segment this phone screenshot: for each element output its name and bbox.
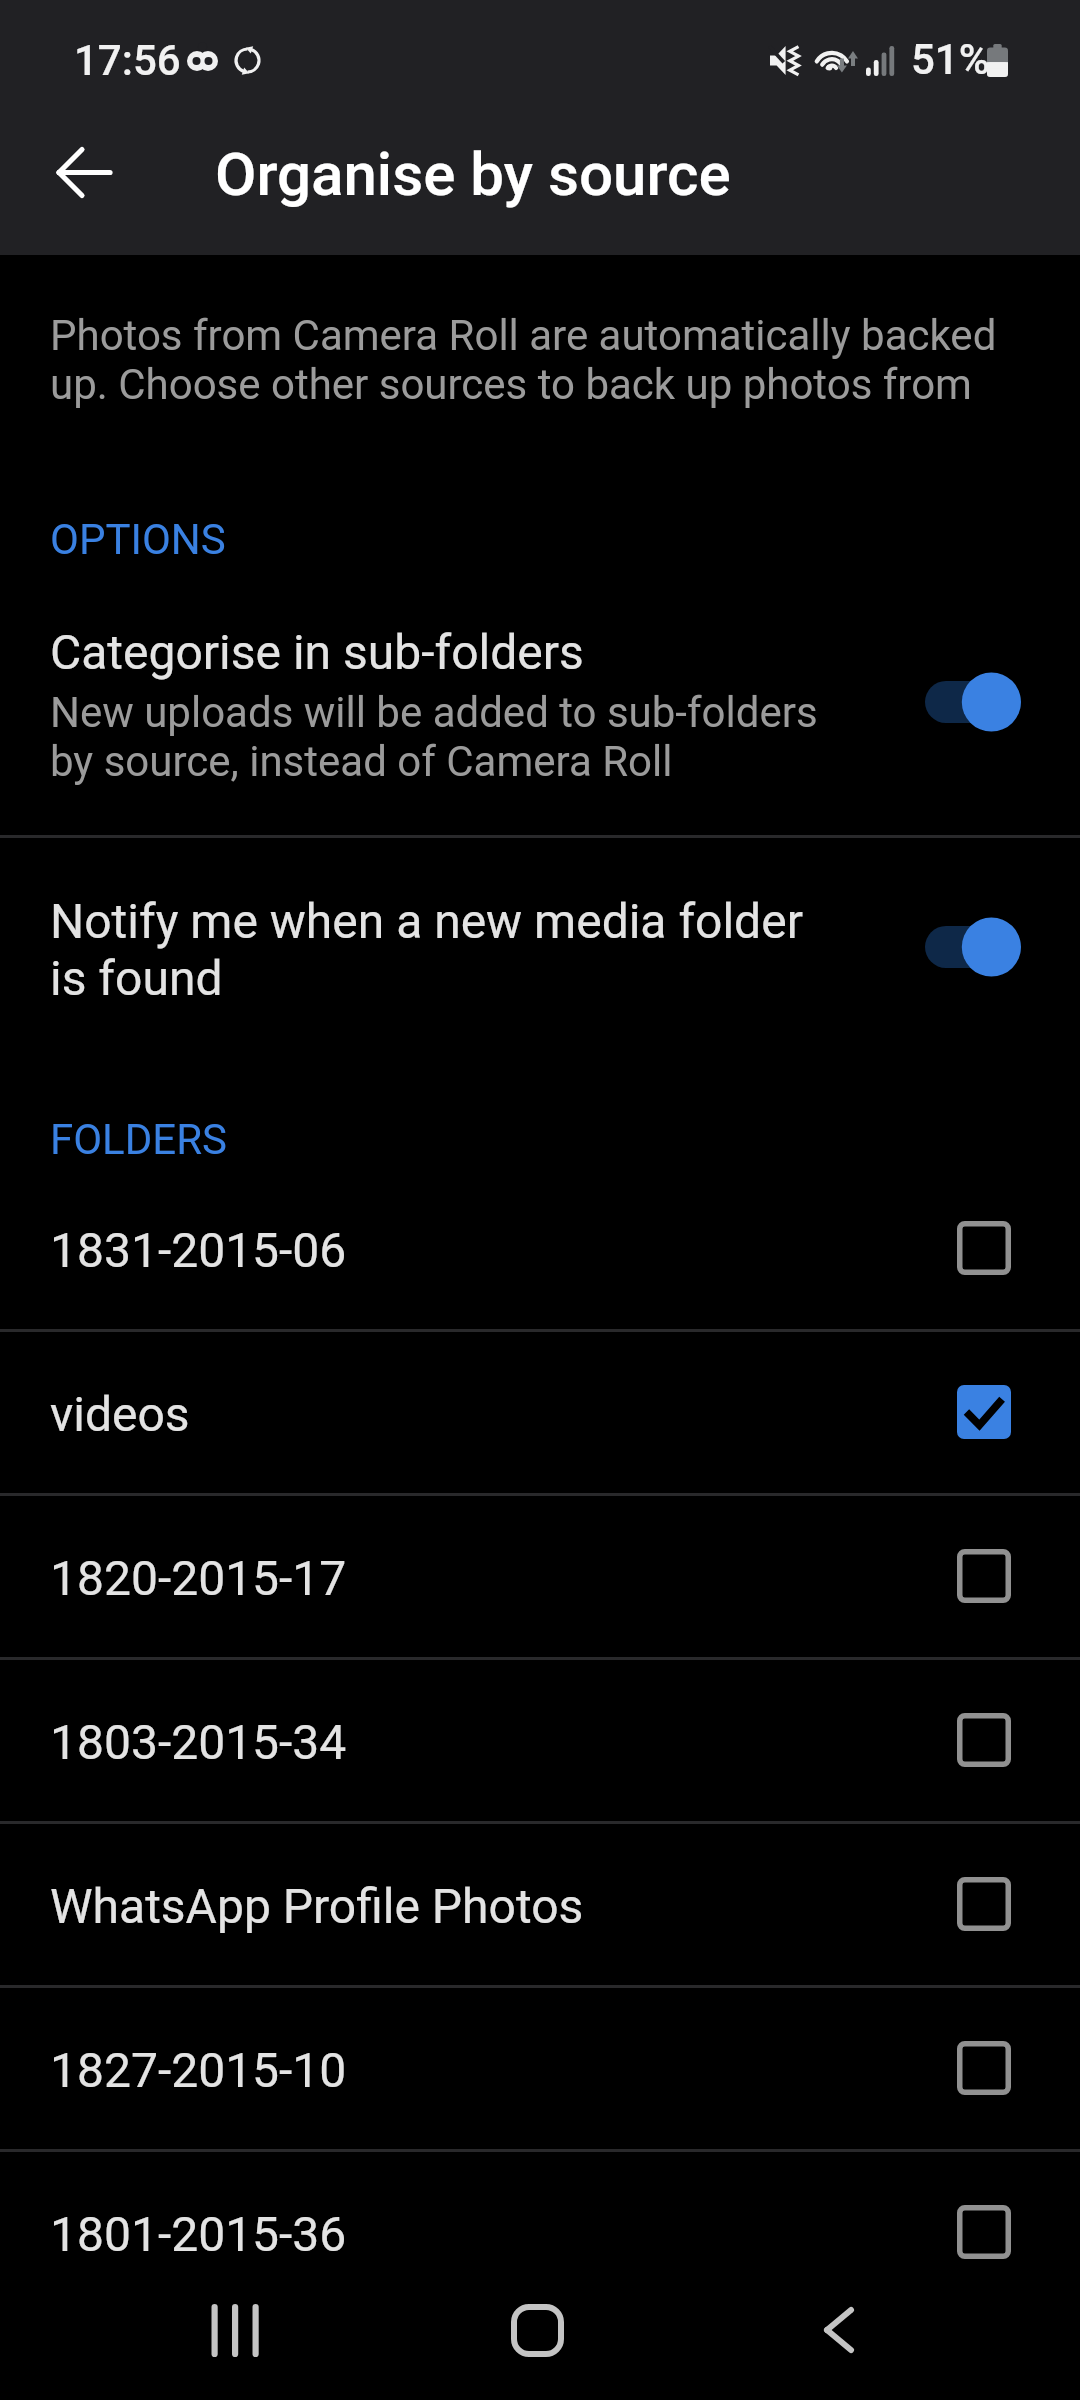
staticText: videos bbox=[50, 1386, 190, 1442]
button[interactable]: Home bbox=[463, 2280, 611, 2380]
staticText: 51% bbox=[911, 35, 990, 84]
button[interactable]: 1831-2015-06 bbox=[0, 1168, 1080, 1331]
button[interactable]: Back bbox=[32, 120, 136, 224]
button[interactable]: videos bbox=[0, 1332, 1080, 1495]
staticText: WhatsApp Profile Photos bbox=[50, 1878, 584, 1934]
staticText: 1827-2015-10 bbox=[50, 2042, 347, 2098]
staticText: New uploads will be added to sub-folders… bbox=[50, 688, 818, 786]
staticText: Organise by source bbox=[215, 139, 731, 209]
button[interactable]: Back bbox=[765, 2280, 913, 2380]
staticText: 1820-2015-17 bbox=[50, 1550, 347, 1606]
button[interactable]: Notify me when a new media folder is fou… bbox=[0, 838, 1080, 1060]
button[interactable]: 1827-2015-10 bbox=[0, 1988, 1080, 2151]
staticText: 1831-2015-06 bbox=[50, 1222, 347, 1278]
staticText: 1801-2015-36 bbox=[50, 2206, 347, 2262]
button[interactable]: 1803-2015-34 bbox=[0, 1660, 1080, 1823]
staticText: OPTIONS bbox=[50, 515, 226, 564]
staticText: Categorise in sub-folders bbox=[50, 624, 584, 681]
staticText: 1803-2015-34 bbox=[50, 1714, 347, 1770]
button[interactable]: 1801-2015-36 bbox=[0, 2152, 1080, 2315]
button[interactable]: WhatsApp Profile Photos bbox=[0, 1824, 1080, 1987]
button[interactable]: Recent apps bbox=[158, 2280, 306, 2380]
staticText: 17:56 bbox=[74, 36, 181, 85]
button[interactable]: 1820-2015-17 bbox=[0, 1496, 1080, 1659]
staticText: Notify me when a new media folder is fou… bbox=[50, 893, 803, 1007]
staticText: Photos from Camera Roll are automaticall… bbox=[50, 311, 997, 409]
staticText: FOLDERS bbox=[50, 1115, 227, 1164]
button[interactable]: Categorise in sub-folders bbox=[0, 580, 1080, 835]
